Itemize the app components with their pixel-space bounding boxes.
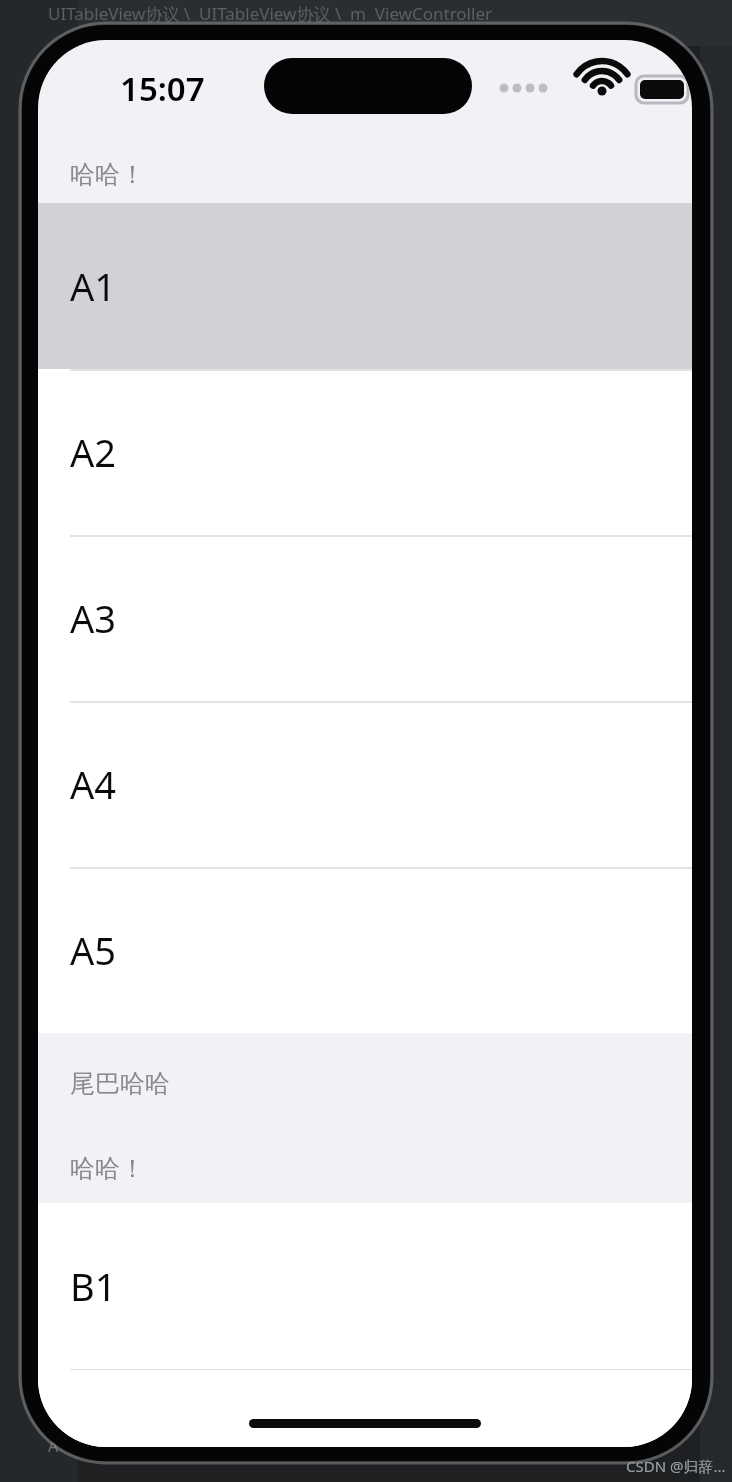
staticText: A2: [70, 426, 117, 478]
button[interactable]: B1: [38, 1203, 692, 1369]
button[interactable]: A3: [38, 535, 692, 701]
button[interactable]: A5: [38, 867, 692, 1033]
button[interactable]: A1: [38, 203, 692, 369]
staticText: 哈哈！: [70, 1153, 145, 1184]
staticText: A1: [70, 260, 117, 312]
staticText: B1: [70, 1260, 117, 1312]
button[interactable]: A2: [38, 369, 692, 535]
button[interactable]: A4: [38, 701, 692, 867]
staticText: 15:07: [120, 66, 205, 111]
staticText: UITableView协议 \ UITableView协议 \ m ViewCo…: [48, 2, 493, 25]
staticText: B2: [70, 1437, 117, 1447]
staticText: A4: [70, 758, 117, 810]
staticText: 尾巴哈哈: [70, 1068, 170, 1099]
staticText: A: [48, 1435, 59, 1457]
staticText: CSDN @归辞...: [626, 1456, 726, 1476]
staticText: A5: [70, 924, 117, 976]
staticText: 哈哈！: [70, 159, 145, 190]
staticText: A3: [70, 592, 117, 644]
